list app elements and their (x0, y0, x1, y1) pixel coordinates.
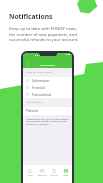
staticText: Home (27, 174, 33, 177)
staticText: Financial (32, 86, 45, 90)
button[interactable]: Home (23, 165, 36, 183)
button[interactable]: Transactional (23, 91, 72, 98)
staticText: Notifications will not be shown during t… (26, 117, 69, 126)
button[interactable]: Information (23, 77, 72, 84)
staticText: Information (32, 79, 50, 83)
staticText: Notifications (40, 63, 55, 66)
staticText: TYPES OF NOTIFICATIONS (26, 71, 53, 74)
staticText: More (63, 174, 69, 177)
other: Back (26, 63, 28, 65)
staticText: Transactional (32, 93, 52, 97)
button[interactable]: Payments (36, 165, 48, 183)
staticText: Planned (26, 109, 38, 113)
staticText: Invoices (50, 174, 59, 177)
button[interactable]: Planned (23, 107, 72, 115)
staticText: Payments (37, 174, 47, 177)
staticText: Keep up to date with FONDY news, the num… (9, 26, 79, 42)
button[interactable]: Financial (23, 84, 72, 91)
button[interactable]: More (60, 165, 72, 183)
button[interactable]: Invoices (48, 165, 60, 183)
staticText: SILENT HOURS (26, 101, 42, 104)
staticText: Notifications (9, 12, 53, 21)
